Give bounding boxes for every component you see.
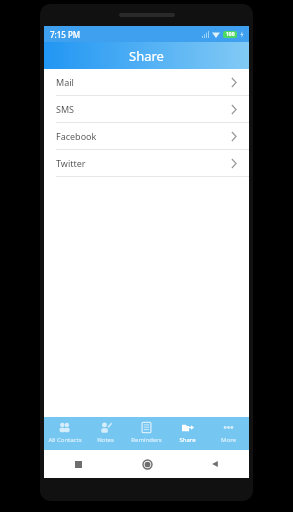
button[interactable]: Share bbox=[167, 417, 208, 450]
button[interactable]: Reminders bbox=[126, 417, 167, 450]
staticText: Notes bbox=[97, 436, 114, 444]
staticText: Facebook bbox=[56, 130, 231, 142]
button[interactable]: Recents bbox=[44, 450, 113, 478]
staticText: Reminders bbox=[131, 436, 162, 444]
button[interactable]: Home bbox=[113, 450, 181, 478]
staticText: Share bbox=[179, 436, 196, 444]
staticText: Twitter bbox=[56, 157, 231, 169]
staticText: Mail bbox=[56, 76, 231, 88]
staticText: Share bbox=[129, 47, 164, 65]
button[interactable]: Mail bbox=[44, 69, 249, 95]
staticText: All Contacts bbox=[48, 436, 82, 444]
button[interactable]: Twitter bbox=[44, 150, 249, 176]
staticText: 100 bbox=[226, 31, 235, 38]
button[interactable]: Back bbox=[181, 450, 249, 478]
button[interactable]: SMS bbox=[44, 96, 249, 122]
staticText: 7:15 PM bbox=[50, 29, 81, 40]
button[interactable]: All Contacts bbox=[44, 417, 85, 450]
staticText: SMS bbox=[56, 103, 231, 115]
button[interactable]: More bbox=[208, 417, 249, 450]
button[interactable]: Facebook bbox=[44, 123, 249, 149]
button[interactable]: Notes bbox=[85, 417, 126, 450]
staticText: More bbox=[221, 436, 236, 444]
